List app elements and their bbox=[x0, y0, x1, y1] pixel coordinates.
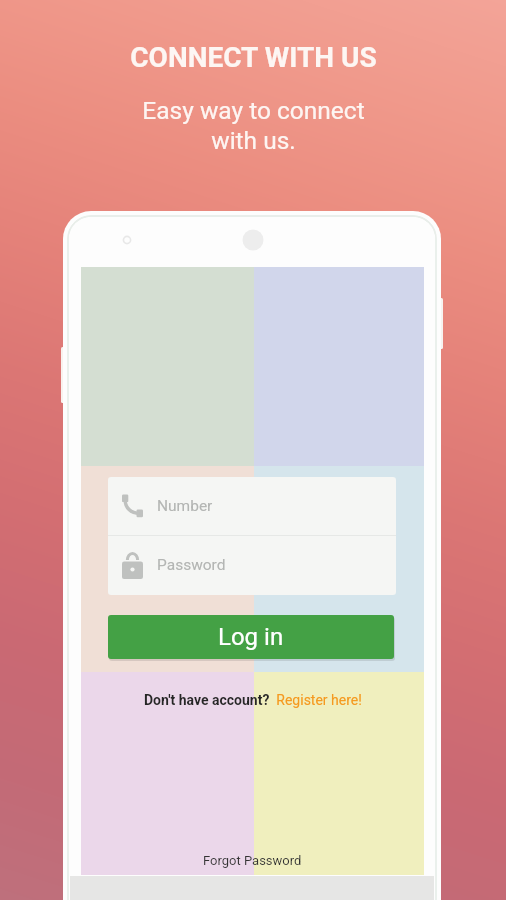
button[interactable]: Don't have account? Register here! bbox=[81, 687, 424, 713]
staticText: Don't have account? Register here! bbox=[144, 692, 362, 708]
staticText: Easy way to connect with us. bbox=[142, 96, 365, 155]
staticText: Log in bbox=[218, 623, 284, 651]
other: Phone number bbox=[121, 494, 144, 518]
staticText: Forgot Password bbox=[203, 853, 302, 868]
button[interactable]: Log in bbox=[108, 615, 394, 659]
other: Password bbox=[122, 552, 143, 579]
button[interactable]: Password bbox=[108, 536, 396, 594]
staticText: Number bbox=[157, 497, 213, 515]
button[interactable]: Phone number bbox=[108, 477, 396, 535]
staticText: Password bbox=[157, 556, 226, 574]
button[interactable]: Forgot Password bbox=[81, 848, 424, 872]
staticText: CONNECT WITH US bbox=[130, 41, 377, 74]
